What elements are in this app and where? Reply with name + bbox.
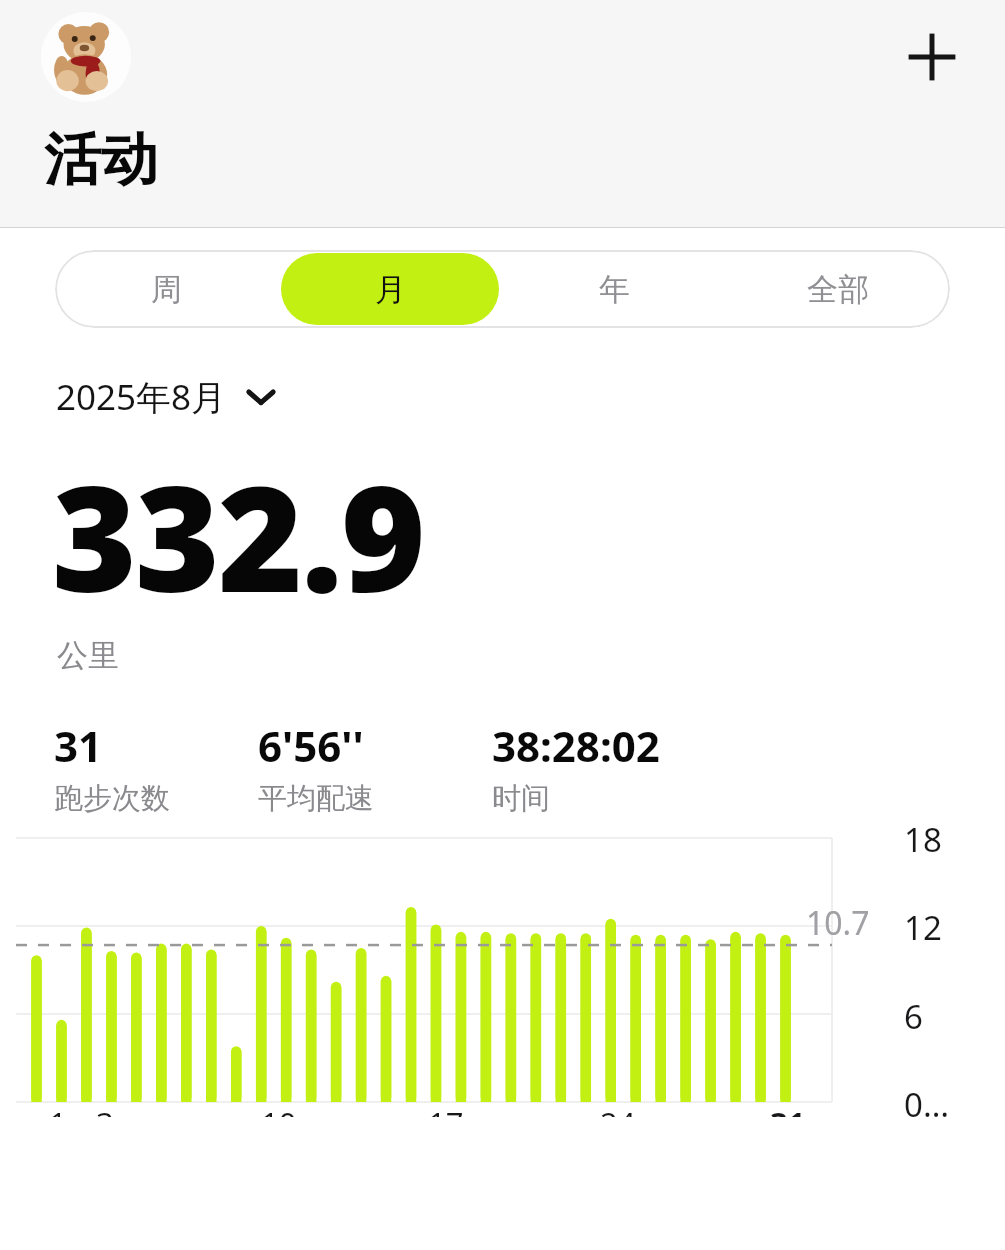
staticText: 17 (428, 1102, 464, 1117)
staticText: 18 (904, 817, 942, 862)
staticText: 月 (375, 270, 406, 309)
staticText: 跑步次数 (54, 780, 170, 817)
staticText: 全部 (807, 270, 869, 309)
staticText: 平均配速 (258, 780, 374, 817)
staticText: 38:28:02 (492, 717, 660, 774)
staticText: 3 (96, 1102, 114, 1117)
staticText: 31 (54, 717, 103, 774)
staticText: 31 (770, 1102, 806, 1117)
button[interactable]: 月 (281, 253, 499, 325)
staticText: 1 (49, 1102, 67, 1117)
staticText: 周 (151, 270, 182, 309)
staticText: 24 (600, 1102, 636, 1117)
staticText: 6'56'' (258, 717, 364, 774)
button[interactable]: 6'56'' (258, 717, 374, 817)
staticText: 6 (904, 994, 923, 1039)
button[interactable]: 2025年8月 (56, 373, 277, 421)
button[interactable]: 38:28:02 (492, 717, 660, 817)
staticText: 0… (904, 1082, 949, 1117)
staticText: 332.9 (52, 437, 424, 634)
button[interactable]: Profile (41, 12, 131, 102)
staticText: 年 (599, 270, 630, 309)
button[interactable]: 周 (58, 253, 275, 325)
button[interactable]: Add (888, 13, 976, 101)
staticText: 2025年8月 (56, 373, 227, 421)
button[interactable]: 年 (505, 253, 723, 325)
staticText: 10 (261, 1102, 297, 1117)
button[interactable]: 全部 (729, 253, 947, 325)
staticText: 公里 (57, 636, 119, 675)
staticText: 时间 (492, 780, 550, 817)
staticText: 12 (904, 905, 942, 950)
staticText: 10.7 (806, 901, 870, 945)
button[interactable]: 31 (54, 717, 170, 817)
staticText: 活动 (44, 124, 158, 196)
